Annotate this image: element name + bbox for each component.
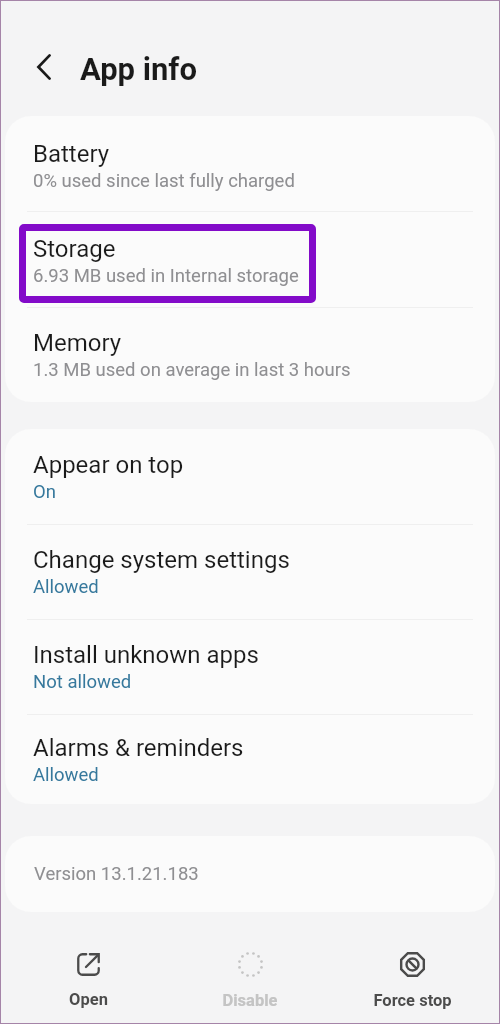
- staticText: Disable: [222, 991, 278, 1010]
- button[interactable]: Alarms & reminders: [5, 715, 495, 804]
- button[interactable]: Memory: [5, 308, 495, 402]
- staticText: App info: [80, 51, 197, 87]
- button[interactable]: Battery: [5, 116, 495, 211]
- staticText: 0% used since last fully charged: [33, 170, 295, 192]
- staticText: Not allowed: [33, 671, 132, 693]
- button[interactable]: Storage: [5, 212, 495, 307]
- staticText: Version 13.1.21.183: [34, 863, 199, 885]
- staticText: Alarms & reminders: [33, 734, 244, 762]
- staticText: Appear on top: [33, 451, 184, 479]
- staticText: Force stop: [373, 991, 452, 1010]
- staticText: On: [33, 481, 56, 503]
- button[interactable]: Back: [20, 43, 68, 91]
- staticText: Open: [69, 990, 108, 1009]
- staticText: Install unknown apps: [33, 641, 259, 669]
- staticText: Battery: [33, 140, 110, 168]
- button[interactable]: Open: [7, 928, 169, 1009]
- other: Disable: [238, 952, 263, 977]
- staticText: Storage: [33, 235, 116, 263]
- staticText: 1.3 MB used on average in last 3 hours: [33, 359, 351, 381]
- button[interactable]: Force stop: [331, 927, 493, 1010]
- button[interactable]: Change system settings: [5, 525, 495, 619]
- other: Force stop: [400, 952, 425, 977]
- button[interactable]: Appear on top: [5, 429, 495, 524]
- button[interactable]: Disable: [169, 927, 331, 1010]
- staticText: Allowed: [33, 764, 99, 786]
- staticText: Change system settings: [33, 546, 290, 574]
- other: Open: [77, 953, 100, 976]
- staticText: Allowed: [33, 576, 99, 598]
- staticText: Memory: [33, 329, 122, 357]
- staticText: 6.93 MB used in Internal storage: [33, 265, 299, 287]
- button[interactable]: Install unknown apps: [5, 620, 495, 714]
